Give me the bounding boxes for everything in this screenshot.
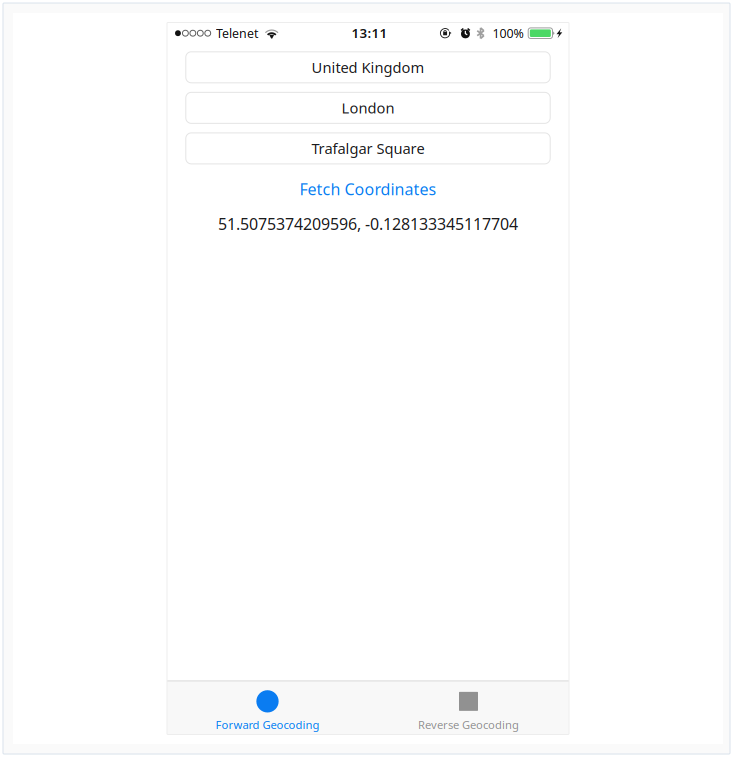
- staticText: 51.5075374209596, -0.128133345117704: [218, 213, 518, 234]
- staticText: Trafalgar Square: [311, 139, 424, 158]
- button[interactable]: Trafalgar Square: [186, 133, 550, 164]
- staticText: Forward Geocoding: [215, 717, 319, 732]
- staticText: 13:11: [352, 24, 388, 42]
- button[interactable]: United Kingdom: [186, 52, 550, 83]
- staticText: Fetch Coordinates: [299, 178, 436, 200]
- button[interactable]: Forward Geocoding: [167, 680, 368, 734]
- staticText: Reverse Geocoding: [418, 717, 519, 732]
- staticText: 100%: [492, 25, 523, 41]
- staticText: Telenet: [216, 25, 258, 41]
- button[interactable]: London: [186, 92, 550, 123]
- staticText: United Kingdom: [311, 58, 424, 77]
- button[interactable]: Fetch Coordinates: [186, 164, 550, 204]
- staticText: London: [341, 98, 394, 118]
- button[interactable]: Reverse Geocoding: [368, 680, 569, 734]
